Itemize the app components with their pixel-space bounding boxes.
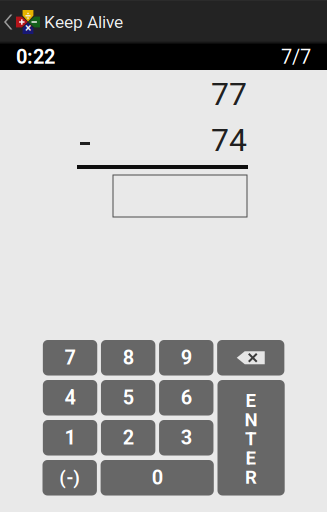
staticText: R	[245, 466, 257, 488]
staticText: T	[245, 428, 257, 450]
button[interactable]: 4	[43, 380, 97, 415]
staticText: 2	[123, 426, 134, 449]
button[interactable]: Back	[3, 0, 42, 44]
button[interactable]: 8	[101, 340, 155, 375]
button[interactable]: 1	[43, 420, 97, 455]
staticText: 9	[181, 346, 192, 369]
button[interactable]: 0	[101, 460, 214, 495]
staticText: 1	[64, 426, 75, 449]
staticText: (-)	[59, 467, 80, 489]
staticText: 0	[152, 466, 163, 489]
staticText: 7/7	[281, 45, 311, 69]
button[interactable]: (-)	[42, 460, 97, 495]
button[interactable]: 9	[159, 340, 213, 375]
staticText: E	[246, 390, 257, 411]
button[interactable]: 2	[101, 420, 155, 455]
staticText: 4	[64, 386, 75, 409]
button[interactable]: 7	[43, 340, 97, 375]
button[interactable]: 3	[159, 420, 213, 455]
staticText: 7	[65, 346, 76, 369]
staticText: 5	[123, 386, 134, 409]
button[interactable]: Backspace	[217, 340, 284, 375]
staticText: 0:22	[16, 45, 55, 69]
button[interactable]: 6	[159, 380, 213, 415]
button[interactable]: E	[217, 380, 285, 495]
button[interactable]: 5	[101, 380, 155, 415]
staticText: 8	[123, 346, 134, 369]
staticText: E	[246, 447, 257, 469]
staticText: ×	[25, 21, 31, 35]
staticText: 6	[181, 386, 192, 409]
staticText: 77	[211, 75, 247, 113]
staticText: Keep Alive	[44, 12, 123, 32]
staticText: 3	[181, 426, 192, 449]
staticText: N	[245, 409, 258, 431]
staticText: 74	[211, 121, 247, 159]
